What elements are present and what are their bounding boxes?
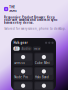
staticText: Cube Mini bbox=[35, 61, 50, 65]
button[interactable]: Cube Mini bbox=[34, 53, 54, 66]
button[interactable]: Lens 50 bbox=[13, 53, 33, 66]
button[interactable]: Node Pro bbox=[13, 67, 33, 80]
staticText: THE bbox=[9, 5, 14, 9]
staticText: Responsive Product Browser. Keep your ca… bbox=[4, 16, 57, 24]
staticText: Lens 50 bbox=[14, 61, 25, 65]
staticText: Wear bbox=[34, 47, 40, 50]
button[interactable]: Tap Lock bbox=[34, 81, 54, 90]
button[interactable]: Halo Band bbox=[34, 67, 54, 80]
button[interactable]: Beam 2 bbox=[13, 81, 33, 90]
staticText: Tailored for every screen, phone to desk… bbox=[4, 27, 66, 30]
staticText: Node Pro bbox=[14, 75, 28, 79]
button[interactable]: Wear bbox=[33, 46, 41, 51]
staticText: Hub.gear bbox=[13, 41, 27, 44]
staticText: All bbox=[14, 47, 18, 50]
staticText: STORE bbox=[9, 9, 16, 12]
button[interactable]: All bbox=[13, 46, 20, 51]
staticText: Audio bbox=[22, 47, 31, 50]
staticText: Halo Band bbox=[35, 75, 49, 79]
button[interactable]: Audio bbox=[21, 46, 32, 51]
